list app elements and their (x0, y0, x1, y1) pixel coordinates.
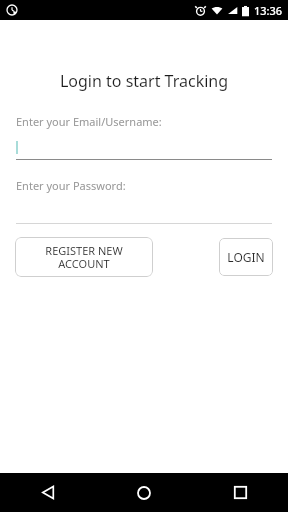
button[interactable]: LOGIN (219, 238, 273, 276)
button[interactable]: Enter your Password: (0, 178, 288, 224)
staticText: Enter your Password: (16, 178, 126, 193)
staticText: Login to start Tracking (0, 70, 288, 92)
button[interactable]: Enter your Email/Username: (0, 114, 288, 160)
staticText: Enter your Email/Username: (16, 114, 162, 129)
button[interactable]: REGISTER NEW ACCOUNT (15, 237, 153, 277)
staticText: REGISTER NEW ACCOUNT (45, 243, 123, 271)
staticText: 13:36 (254, 3, 283, 18)
staticText: LOGIN (227, 249, 265, 265)
button[interactable]: Recent apps (192, 473, 288, 512)
button[interactable]: Back (0, 473, 96, 512)
button[interactable]: Home (96, 473, 192, 512)
